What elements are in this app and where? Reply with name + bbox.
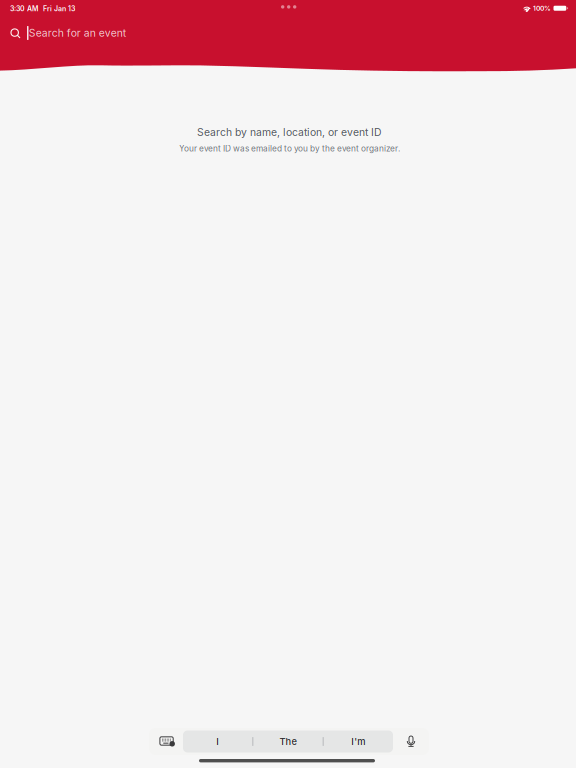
staticText: I'm <box>351 736 365 747</box>
staticText: Search by name, location, or event ID <box>197 126 382 139</box>
staticText: The <box>279 736 296 747</box>
button[interactable]: Dictate <box>393 728 429 755</box>
button[interactable]: Search for an event <box>0 22 576 44</box>
button[interactable]: I <box>183 730 252 752</box>
staticText: 100% <box>533 4 551 12</box>
button[interactable]: The <box>253 730 323 752</box>
staticText: Your event ID was emailed to you by the … <box>179 144 400 154</box>
staticText: 3:30 AM <box>10 5 38 13</box>
button[interactable]: I'm <box>324 730 393 752</box>
staticText: Fri Jan 13 <box>43 5 75 13</box>
button[interactable]: Keyboard options <box>149 728 183 755</box>
staticText: Search for an event <box>29 27 126 39</box>
staticText: I <box>216 736 219 747</box>
